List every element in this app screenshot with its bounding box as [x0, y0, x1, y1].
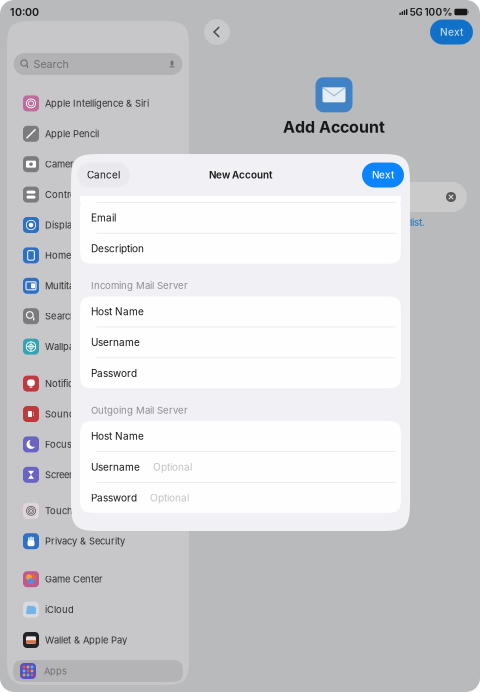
button[interactable]: Host Name	[80, 421, 401, 451]
staticText: 5G	[409, 6, 422, 18]
button[interactable]: Password	[80, 483, 401, 513]
staticText: Host Name	[91, 430, 144, 442]
button[interactable]: Username	[80, 452, 401, 482]
button[interactable]: Next	[430, 19, 473, 44]
button[interactable]: Search	[7, 294, 189, 324]
staticText: iCloud	[45, 604, 74, 615]
staticText: Notifications	[45, 378, 100, 389]
staticText: Add Account	[283, 117, 385, 137]
staticText: Touch ID	[45, 505, 86, 516]
staticText: Incoming Mail Server	[91, 280, 188, 291]
button[interactable]: Wallet & Apple Pay	[7, 618, 189, 648]
staticText: Contact your network administrator for a…	[227, 217, 425, 228]
staticText: Username	[91, 336, 140, 348]
button[interactable]: Host Name	[80, 296, 401, 327]
button[interactable]: Description	[80, 234, 401, 264]
staticText: Next	[440, 26, 463, 38]
staticText: Username	[91, 461, 140, 473]
staticText: Search	[45, 311, 76, 322]
button[interactable]: Username	[80, 327, 401, 357]
staticText: Optional	[150, 492, 189, 504]
staticText: Multitasking	[45, 280, 98, 291]
button[interactable]: Screen Time	[7, 452, 189, 483]
staticText: Optional	[153, 461, 192, 473]
button[interactable]: Game Center	[7, 549, 189, 587]
button[interactable]: Next	[362, 162, 404, 187]
staticText: Sound	[45, 408, 75, 420]
button[interactable]: Sound	[7, 392, 189, 422]
staticText: Next	[372, 169, 394, 181]
staticText: Apple Intelligence & Siri	[45, 98, 149, 109]
staticText: Home Screen	[45, 250, 104, 261]
staticText: Focus	[45, 439, 72, 450]
staticText: New Account	[209, 169, 272, 181]
button[interactable]: Display	[7, 203, 189, 233]
button[interactable]: Apple Pencil	[7, 111, 189, 142]
staticText: Wallet & Apple Pay	[45, 634, 127, 646]
staticText: Privacy & Security	[45, 536, 125, 547]
button[interactable]: Home Screen	[7, 233, 189, 263]
button[interactable]: Focus	[7, 422, 189, 452]
staticText: Apps	[44, 665, 67, 677]
staticText: Email	[91, 212, 116, 224]
staticText: Screen Time	[45, 469, 99, 480]
button[interactable]: Wallpaper	[7, 324, 189, 355]
button[interactable]: Apple Intelligence & Siri	[7, 81, 189, 111]
staticText: Password	[91, 367, 137, 379]
button[interactable]: Control Centre	[7, 172, 189, 203]
button[interactable]: Privacy & Security	[7, 519, 189, 549]
staticText: Apple Pencil	[45, 128, 99, 139]
button[interactable]: Camera	[7, 142, 189, 172]
button[interactable]: Cancel	[77, 162, 130, 187]
staticText: Password	[91, 492, 137, 504]
button[interactable]: Email	[80, 203, 401, 233]
staticText: Control Centre	[45, 189, 110, 200]
button[interactable]: Touch ID	[7, 483, 189, 519]
button[interactable]: Apps	[13, 660, 183, 682]
staticText: Cancel	[87, 169, 120, 181]
staticText: Wallpaper	[45, 341, 89, 352]
staticText: Camera	[45, 159, 79, 170]
staticText: Host Name	[91, 305, 144, 318]
staticText: Display	[45, 219, 77, 231]
button[interactable]: Back	[204, 19, 230, 45]
staticText: 10:00	[10, 5, 39, 18]
button[interactable]: Multitasking	[7, 263, 189, 294]
staticText: 100%	[424, 6, 452, 18]
staticText: Outgoing Mail Server	[91, 404, 188, 416]
staticText: Search	[33, 57, 68, 70]
button[interactable]: Notifications	[7, 355, 189, 392]
button[interactable]: Password	[80, 358, 401, 388]
staticText: Game Center	[45, 574, 103, 585]
button[interactable]: iCloud	[7, 587, 189, 618]
staticText: Description	[91, 243, 144, 255]
